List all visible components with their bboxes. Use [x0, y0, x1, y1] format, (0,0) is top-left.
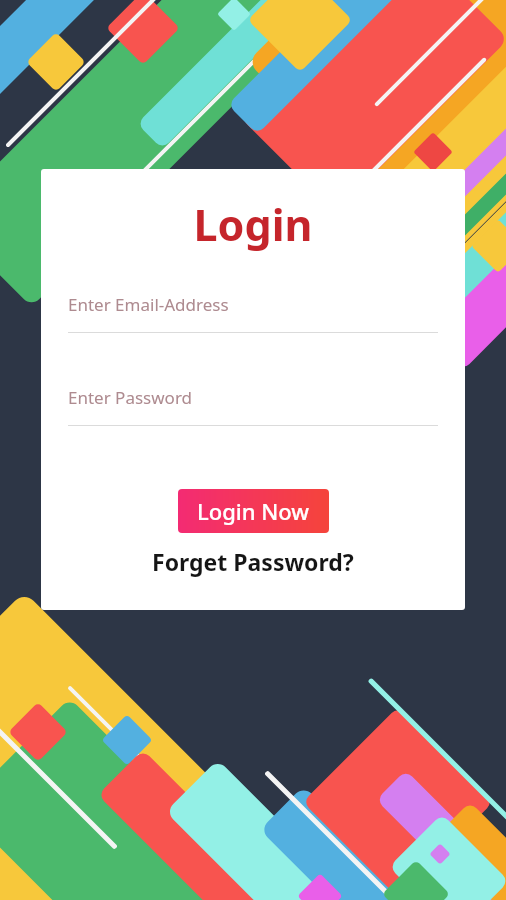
- staticText: Enter Password: [68, 386, 193, 409]
- button[interactable]: Login Now: [178, 489, 329, 533]
- button[interactable]: Enter Email-Address: [68, 293, 438, 333]
- button[interactable]: Forget Password?: [144, 543, 362, 580]
- button[interactable]: Enter Password: [68, 386, 438, 426]
- staticText: Forget Password?: [152, 546, 354, 577]
- staticText: Login Now: [197, 496, 310, 526]
- staticText: Enter Email-Address: [68, 293, 229, 316]
- staticText: Login: [41, 195, 465, 254]
